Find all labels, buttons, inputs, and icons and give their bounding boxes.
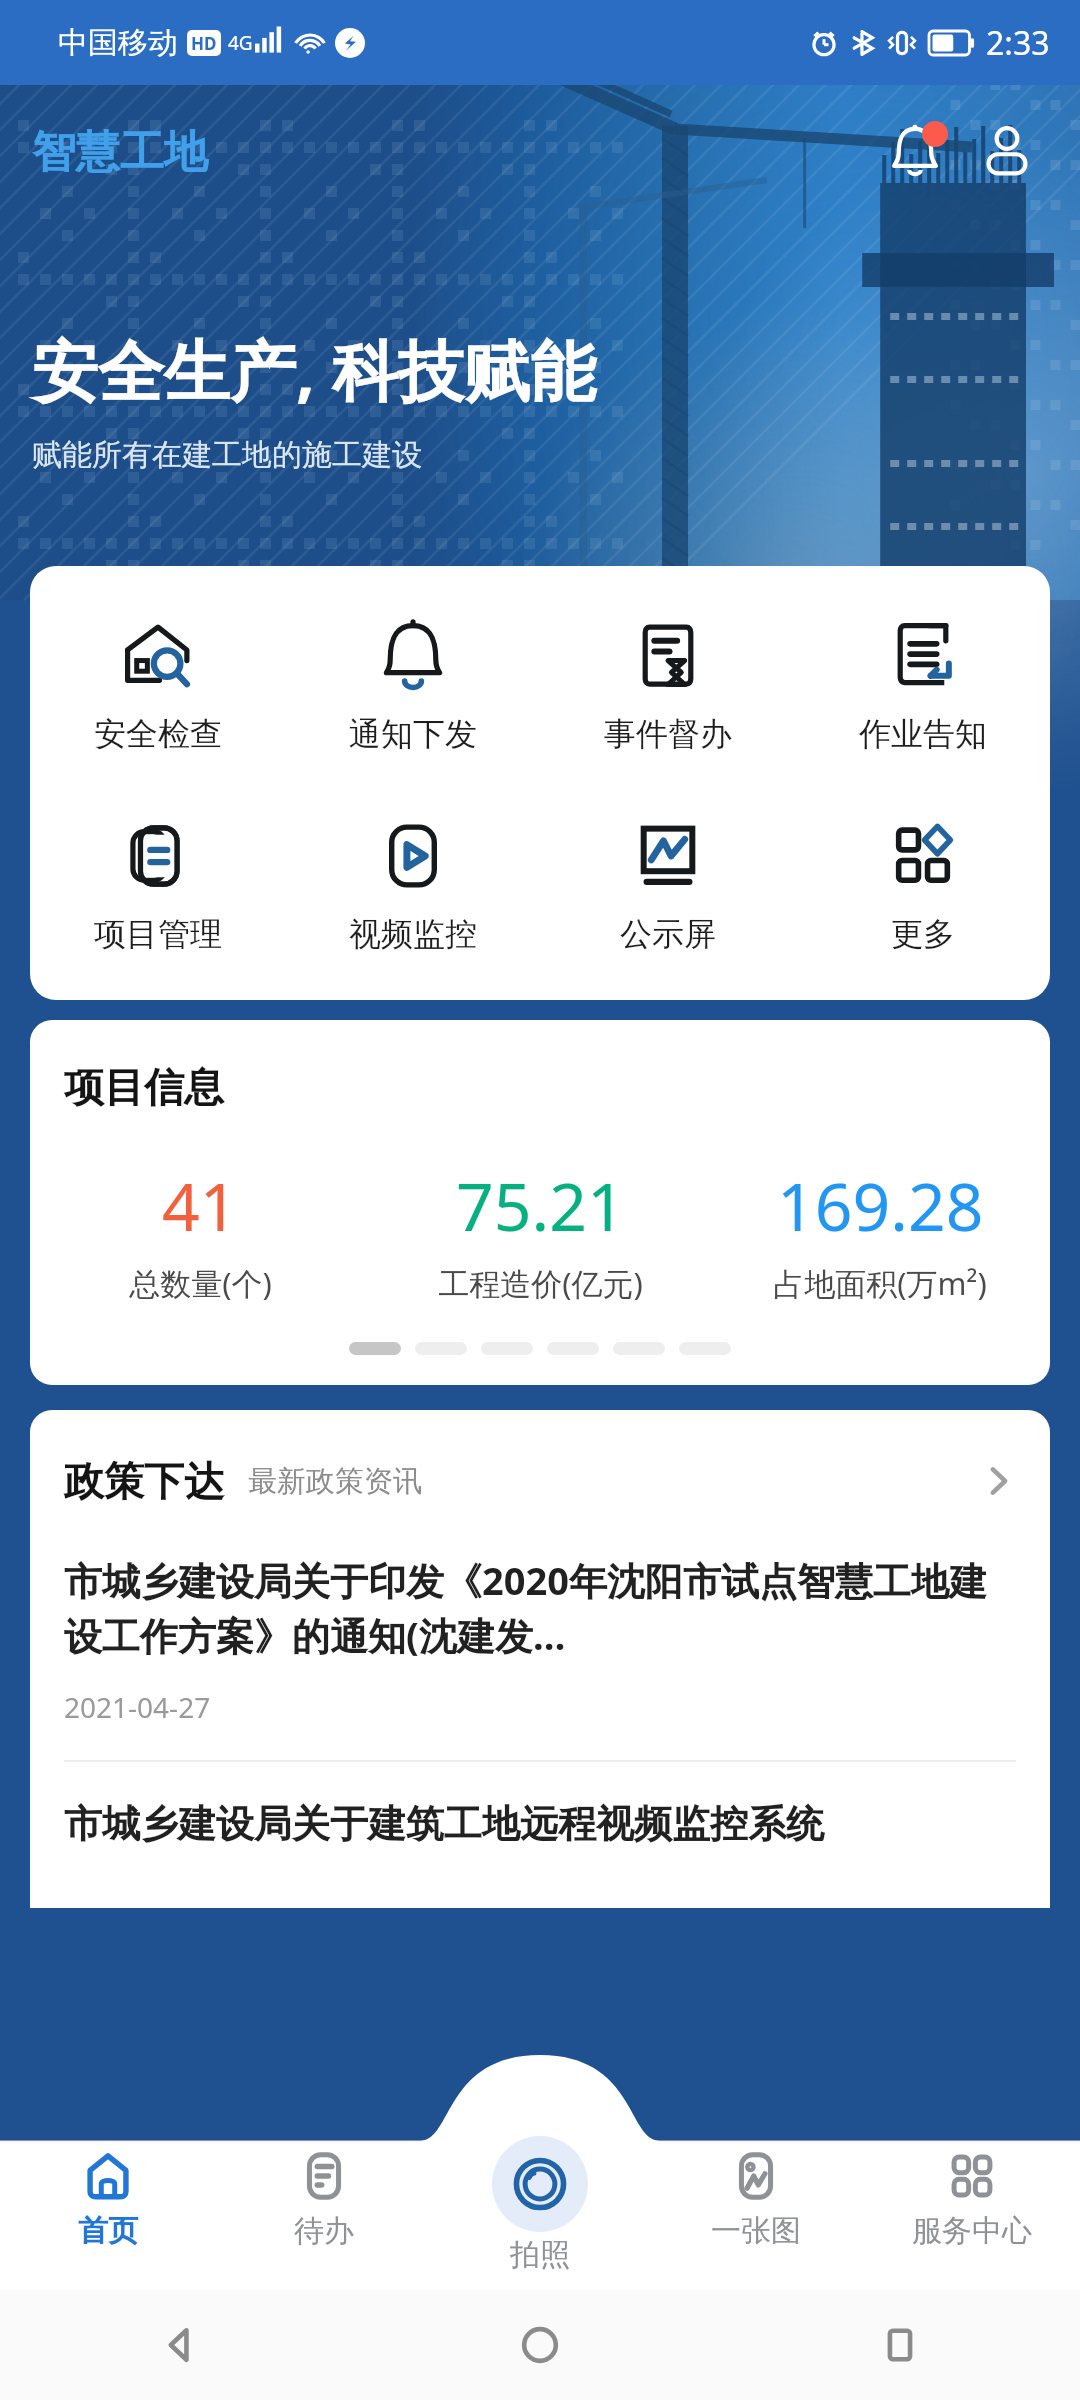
staticText: 工程造价(亿元): [438, 1262, 643, 1304]
button[interactable]: 拍照: [432, 2136, 648, 2274]
staticText: 最新政策资讯: [248, 1463, 422, 1500]
staticText: 视频监控: [349, 914, 477, 954]
staticText: 4G: [228, 30, 253, 56]
staticText: 政策下达: [64, 1456, 224, 1506]
staticText: 安全生产, 科技赋能: [32, 324, 596, 414]
staticText: 市城乡建设局关于印发《2020年沈阳市试点智慧工地建设工作方案》的通知(沈建发…: [64, 1554, 1016, 1662]
button[interactable]: 视频监控: [285, 810, 540, 962]
staticText: 项目信息: [64, 1062, 224, 1112]
button[interactable]: 安全检查: [30, 610, 285, 762]
staticText: 赋能所有在建工地的施工建设: [32, 436, 422, 474]
staticText: 通知下发: [349, 714, 477, 754]
staticText: 2:33: [986, 21, 1050, 65]
button[interactable]: 项目管理: [30, 810, 285, 962]
staticText: 安全检查: [94, 714, 222, 754]
button[interactable]: 服务中心: [864, 2136, 1080, 2250]
staticText: 2021-04-27: [64, 1688, 211, 1726]
button[interactable]: 公示屏: [540, 810, 795, 962]
staticText: 服务中心: [912, 2212, 1032, 2250]
staticText: 中国移动: [58, 24, 178, 62]
staticText: 169.28: [777, 1160, 984, 1250]
staticText: 作业告知: [859, 714, 987, 754]
staticText: 事件督办: [604, 714, 732, 754]
button[interactable]: 169.28: [710, 1160, 1050, 1304]
button[interactable]: 更多: [795, 810, 1050, 962]
staticText: 市城乡建设局关于建筑工地远程视频监控系统: [64, 1800, 824, 1848]
staticText: 拍照: [510, 2236, 570, 2274]
button[interactable]: 75.21: [370, 1160, 710, 1304]
staticText: 待办: [294, 2212, 354, 2250]
button[interactable]: 市城乡建设局关于建筑工地远程视频监控系统: [30, 1800, 1050, 1848]
button[interactable]: 通知: [876, 113, 954, 191]
staticText: 智慧工地: [32, 125, 208, 180]
button[interactable]: 作业告知: [795, 610, 1050, 762]
staticText: 项目管理: [94, 914, 222, 954]
staticText: 首页: [78, 2212, 138, 2250]
staticText: 41: [162, 1160, 238, 1250]
button[interactable]: 个人中心: [968, 113, 1046, 191]
button[interactable]: 政策下达: [30, 1456, 1050, 1506]
staticText: 占地面积(万m²): [773, 1262, 987, 1304]
button[interactable]: 一张图: [648, 2136, 864, 2250]
button[interactable]: 通知下发: [285, 610, 540, 762]
button[interactable]: 事件督办: [540, 610, 795, 762]
staticText: 总数量(个): [129, 1262, 272, 1304]
staticText: 公示屏: [620, 914, 716, 954]
button[interactable]: 市城乡建设局关于印发《2020年沈阳市试点智慧工地建设工作方案》的通知(沈建发…: [30, 1554, 1050, 1726]
staticText: 75.21: [456, 1160, 625, 1250]
staticText: HD: [191, 32, 217, 55]
button[interactable]: 待办: [216, 2136, 432, 2250]
staticText: 更多: [891, 914, 955, 954]
button[interactable]: 首页: [0, 2136, 216, 2250]
button[interactable]: 41: [30, 1160, 370, 1304]
staticText: 一张图: [711, 2212, 801, 2250]
